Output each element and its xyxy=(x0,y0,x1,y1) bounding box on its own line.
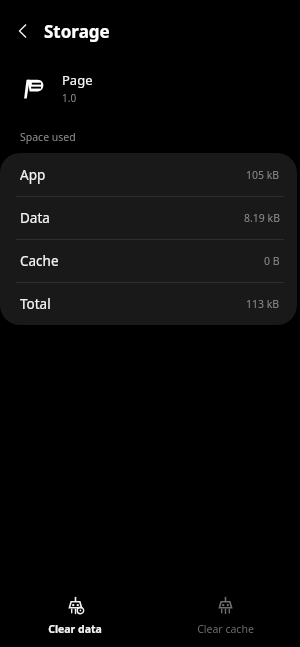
button[interactable]: Page xyxy=(0,62,300,114)
staticText: Data xyxy=(20,209,50,227)
button[interactable]: App xyxy=(0,153,297,196)
staticText: Total xyxy=(20,295,51,313)
staticText: Page xyxy=(62,71,93,89)
staticText: Clear data xyxy=(48,622,102,636)
staticText: Cache xyxy=(20,252,59,270)
staticText: 8.19 kB xyxy=(244,211,280,225)
button[interactable]: Data xyxy=(0,197,297,239)
button[interactable]: Back xyxy=(8,16,38,46)
staticText: 1.0 xyxy=(62,91,77,105)
staticText: Space used xyxy=(20,130,76,144)
button[interactable]: Cache xyxy=(0,240,297,282)
staticText: 105 kB xyxy=(246,168,280,182)
staticText: Clear cache xyxy=(197,622,254,636)
staticText: 113 kB xyxy=(246,297,280,311)
button[interactable]: Total xyxy=(0,283,297,325)
staticText: 0 B xyxy=(264,254,280,268)
button[interactable]: Clear data xyxy=(0,585,150,647)
button[interactable]: Clear cache xyxy=(150,585,300,647)
staticText: App xyxy=(20,166,46,184)
staticText: Storage xyxy=(44,20,110,43)
